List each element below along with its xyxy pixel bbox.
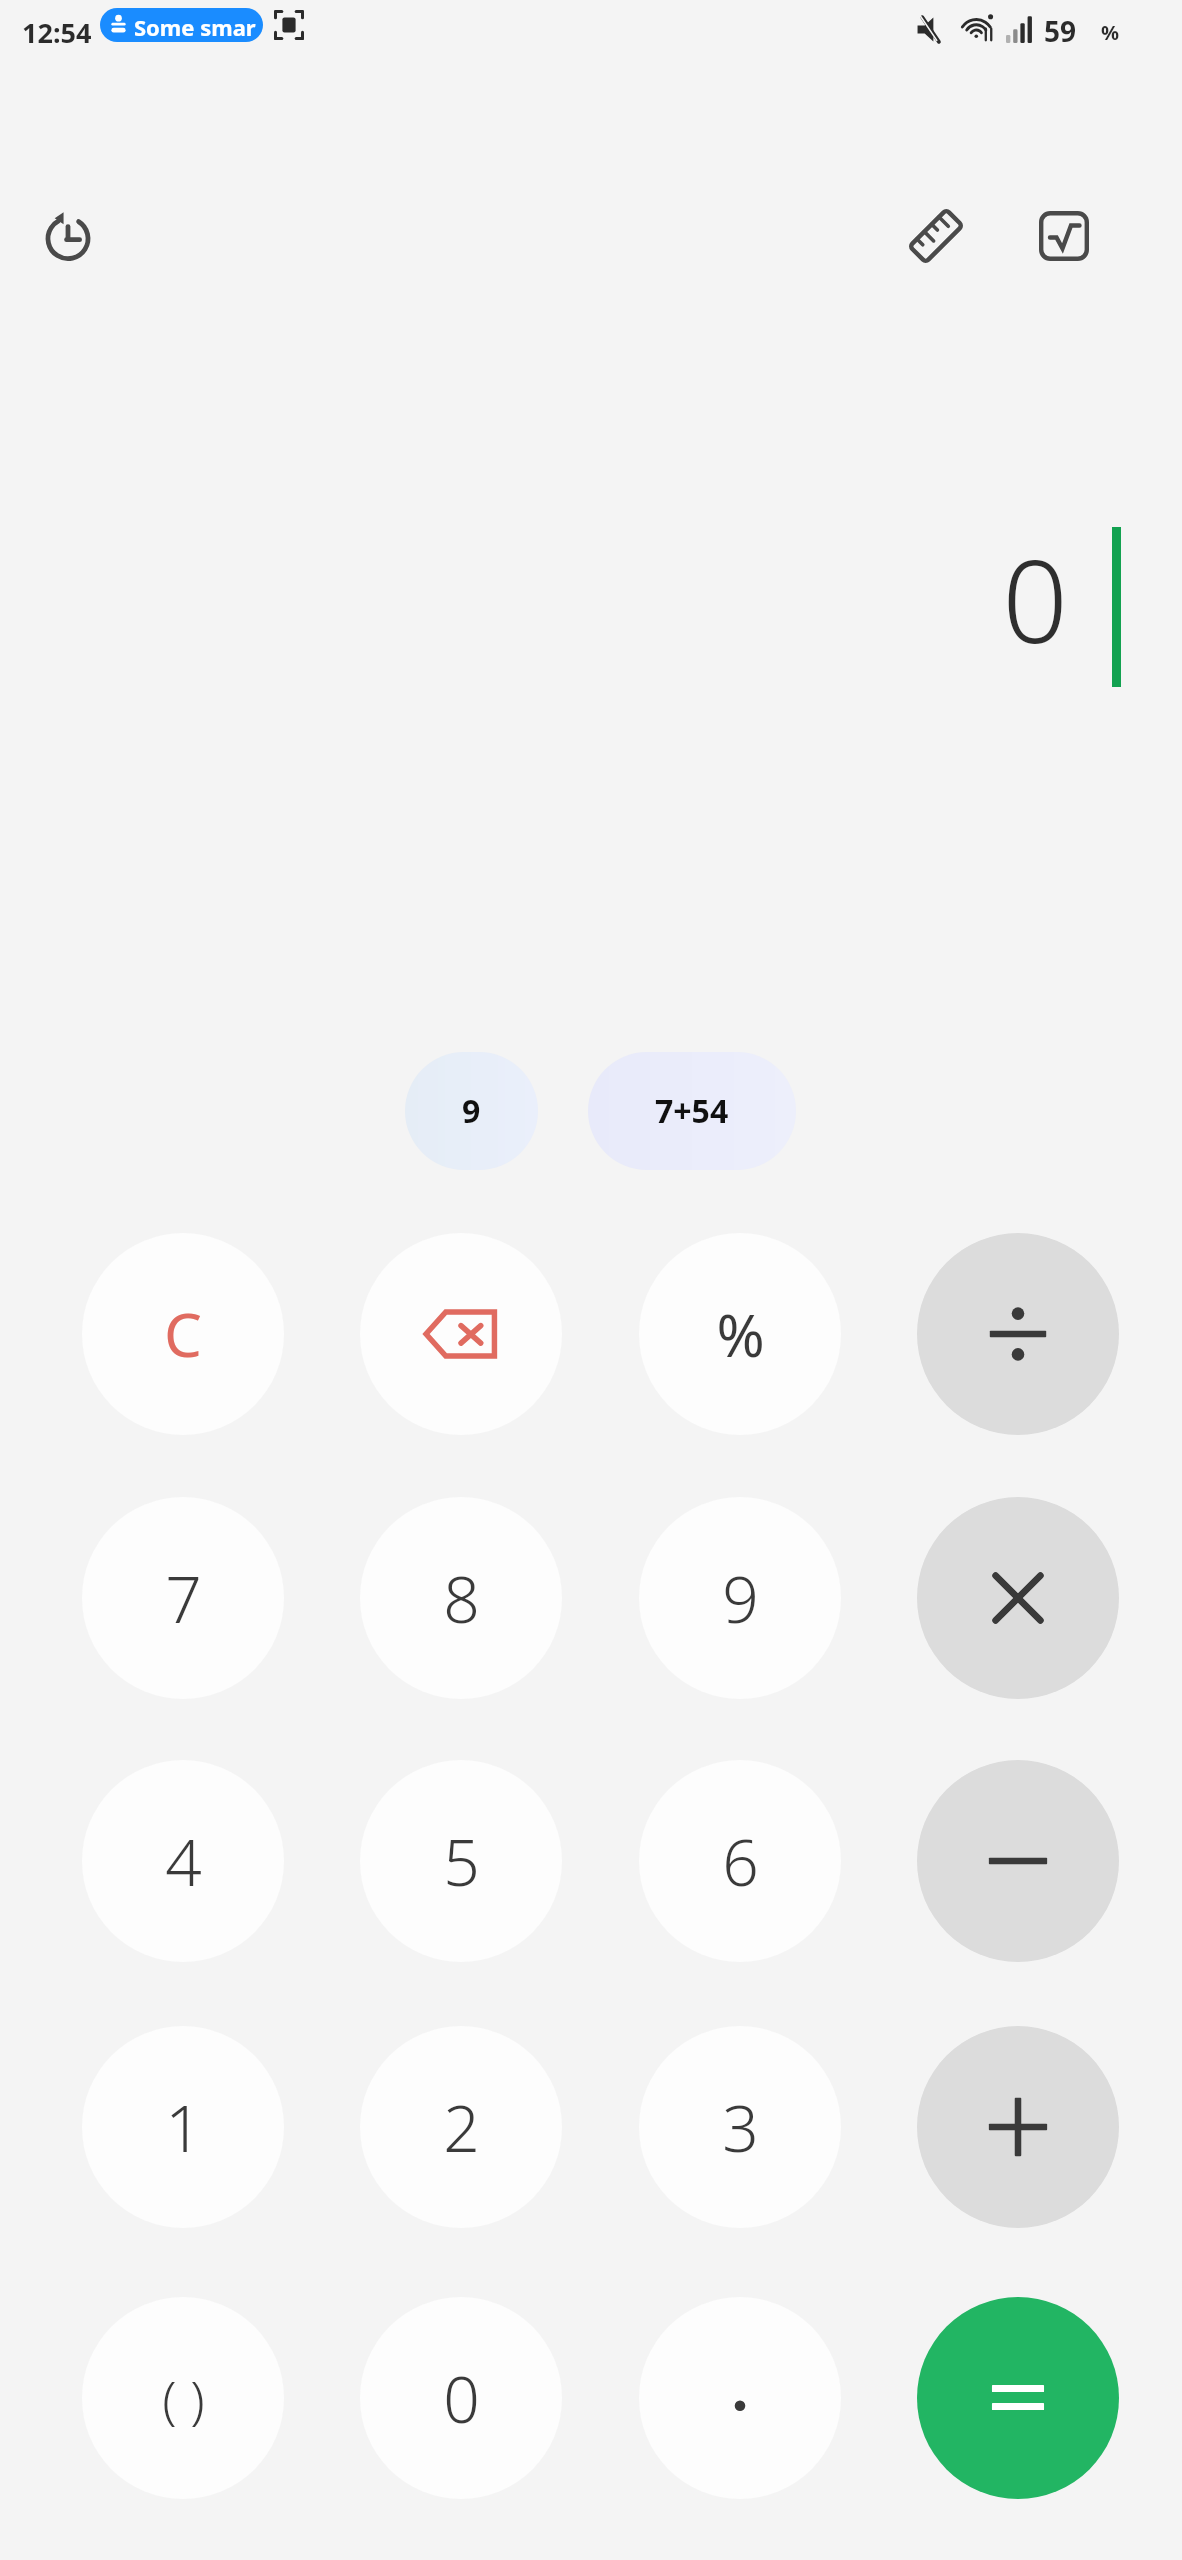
staticText: 7+54 <box>655 1089 729 1133</box>
staticText: 12:54 <box>22 14 92 51</box>
staticText: 8 <box>443 1555 480 1642</box>
button[interactable]: C <box>82 1233 284 1435</box>
button[interactable]: 7+54 <box>588 1052 796 1170</box>
other: Wi-Fi <box>962 11 996 45</box>
button[interactable]: 6 <box>639 1760 841 1962</box>
button[interactable]: Divide <box>917 1233 1119 1435</box>
staticText: 1 <box>165 2084 202 2171</box>
button[interactable]: Unit converter <box>890 190 982 282</box>
staticText: 59 <box>1044 12 1077 50</box>
staticText: C <box>164 1293 202 1375</box>
button[interactable]: 3 <box>639 2026 841 2228</box>
button[interactable]: 1 <box>82 2026 284 2228</box>
staticText: 0 <box>1002 520 1068 677</box>
staticText: 2 <box>443 2084 480 2171</box>
button[interactable]: Decimal point <box>639 2297 841 2499</box>
button[interactable]: History <box>22 190 114 282</box>
button[interactable]: 9 <box>405 1052 538 1170</box>
button[interactable]: Minus <box>917 1760 1119 1962</box>
button[interactable]: Plus <box>917 2026 1119 2228</box>
button[interactable]: 9 <box>639 1497 841 1699</box>
other: Scan <box>274 10 304 40</box>
staticText: 5 <box>443 1818 480 1905</box>
staticText: 7 <box>165 1555 202 1642</box>
staticText: 4 <box>165 1818 202 1905</box>
button[interactable]: Multiply <box>917 1497 1119 1699</box>
staticText: 3 <box>722 2084 759 2171</box>
button[interactable]: 2 <box>360 2026 562 2228</box>
button[interactable]: 7 <box>82 1497 284 1699</box>
staticText: 0 <box>443 2355 480 2442</box>
button[interactable]: 5 <box>360 1760 562 1962</box>
staticText: % <box>716 1295 765 1374</box>
staticText: 6 <box>722 1818 759 1905</box>
button[interactable]: Equals <box>917 2297 1119 2499</box>
button[interactable]: 8 <box>360 1497 562 1699</box>
button[interactable]: Backspace <box>360 1233 562 1435</box>
button[interactable]: ( ) <box>82 2297 284 2499</box>
staticText: ( ) <box>162 2363 205 2434</box>
button[interactable]: 0 <box>360 2297 562 2499</box>
button[interactable]: % <box>639 1233 841 1435</box>
staticText: % <box>1101 19 1120 46</box>
other: Signal <box>1006 14 1035 43</box>
staticText: Some smar <box>134 12 256 42</box>
other: Mute <box>916 14 947 45</box>
staticText: 9 <box>462 1089 481 1133</box>
button[interactable]: Notification <box>100 8 263 42</box>
button[interactable]: 4 <box>82 1760 284 1962</box>
staticText: 9 <box>722 1555 759 1642</box>
button[interactable]: Scientific calculator <box>1018 190 1110 282</box>
